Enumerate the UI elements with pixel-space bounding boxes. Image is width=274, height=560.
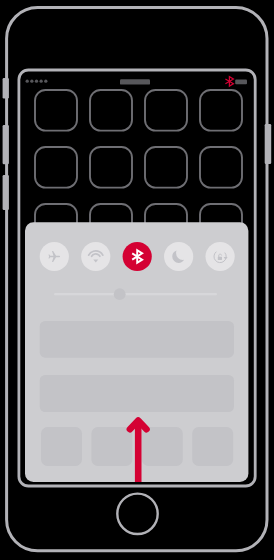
button[interactable]: Do not disturb [164, 242, 193, 271]
button[interactable]: Home [117, 493, 159, 535]
button[interactable]: Calculator [142, 427, 183, 466]
button[interactable]: Timer [91, 427, 132, 466]
button[interactable]: Wi-Fi [81, 242, 110, 271]
button[interactable]: Bluetooth [123, 242, 152, 271]
button[interactable]: Airplane mode [40, 242, 69, 271]
button[interactable]: Rotation lock [206, 242, 235, 271]
button[interactable]: Brightness slider [40, 286, 234, 302]
